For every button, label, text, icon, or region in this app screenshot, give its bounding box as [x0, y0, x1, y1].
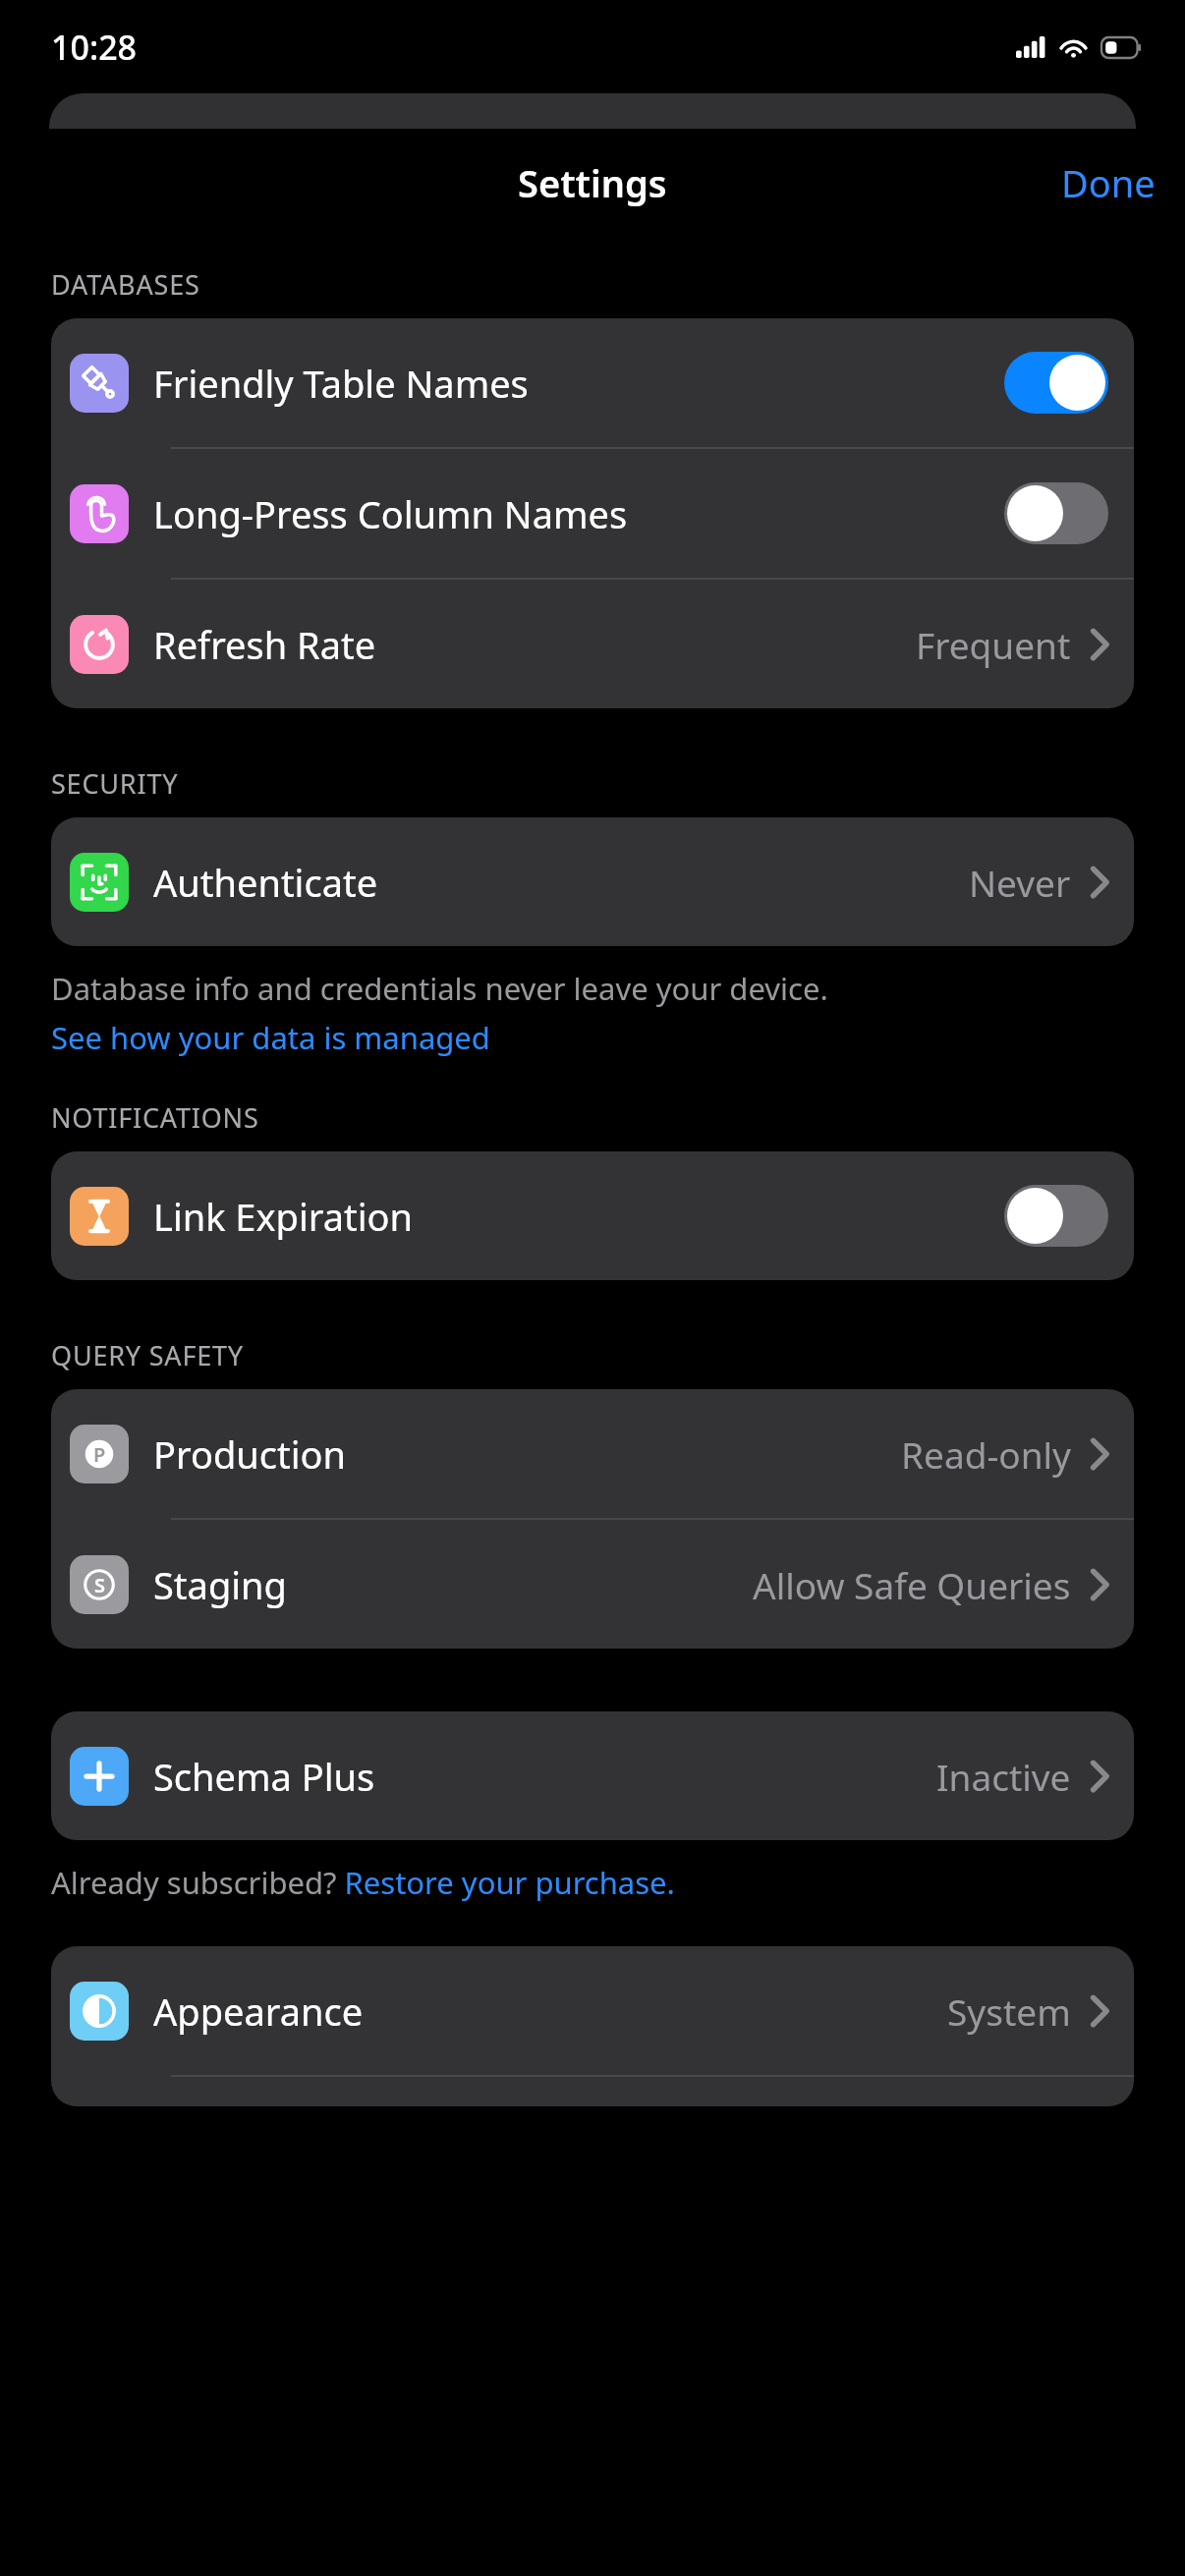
staticText: Long-Press Column Names [153, 488, 628, 539]
staticText: Allow Safe Queries [753, 1560, 1071, 1609]
staticText: Link Expiration [153, 1191, 414, 1242]
staticText: S [94, 1572, 105, 1598]
button[interactable]: Schema Plus [51, 1711, 1134, 1840]
staticText: Settings [518, 157, 667, 208]
staticText: NOTIFICATIONS [51, 1099, 259, 1136]
button[interactable]: Done [1032, 145, 1185, 220]
button[interactable]: S [51, 1520, 1134, 1649]
staticText: Already subscribed? Restore your purchas… [51, 1862, 675, 1903]
button[interactable]: Authenticate [51, 817, 1134, 946]
staticText: Frequent [916, 620, 1071, 669]
button[interactable]: Friendly Table Names [51, 318, 1134, 447]
staticText: Appearance [153, 1986, 364, 2037]
staticText: Database info and credentials never leav… [51, 968, 828, 1009]
button[interactable]: Link Expiration [1004, 1185, 1108, 1247]
staticText: See how your data is managed [51, 1017, 490, 1058]
staticText: Refresh Rate [153, 619, 376, 670]
button[interactable]: Long-Press Column Names [1004, 482, 1108, 544]
button[interactable]: Already subscribed? Restore your purchas… [51, 1862, 675, 1903]
staticText: System [947, 1987, 1071, 2036]
button[interactable]: See how your data is managed [51, 1017, 490, 1058]
staticText: 10:28 [51, 25, 138, 70]
staticText: Never [969, 858, 1071, 907]
button[interactable]: Refresh Rate [51, 580, 1134, 708]
staticText: Done [1061, 157, 1156, 208]
staticText: Production [153, 1428, 347, 1480]
staticText: QUERY SAFETY [51, 1337, 244, 1373]
staticText: Authenticate [153, 857, 378, 908]
button[interactable]: Friendly Table Names [1004, 352, 1108, 414]
staticText: Friendly Table Names [153, 358, 529, 409]
button[interactable]: Long-Press Column Names [51, 449, 1134, 578]
staticText: Read-only [901, 1429, 1071, 1479]
staticText: Staging [153, 1559, 287, 1610]
staticText: SECURITY [51, 765, 179, 802]
button[interactable]: Appearance [51, 1946, 1134, 2075]
button[interactable]: P [51, 1389, 1134, 1518]
staticText: Inactive [936, 1752, 1071, 1801]
button[interactable]: Link Expiration [51, 1151, 1134, 1280]
staticText: Schema Plus [153, 1751, 375, 1802]
staticText: DATABASES [51, 266, 200, 303]
staticText: P [93, 1441, 106, 1468]
